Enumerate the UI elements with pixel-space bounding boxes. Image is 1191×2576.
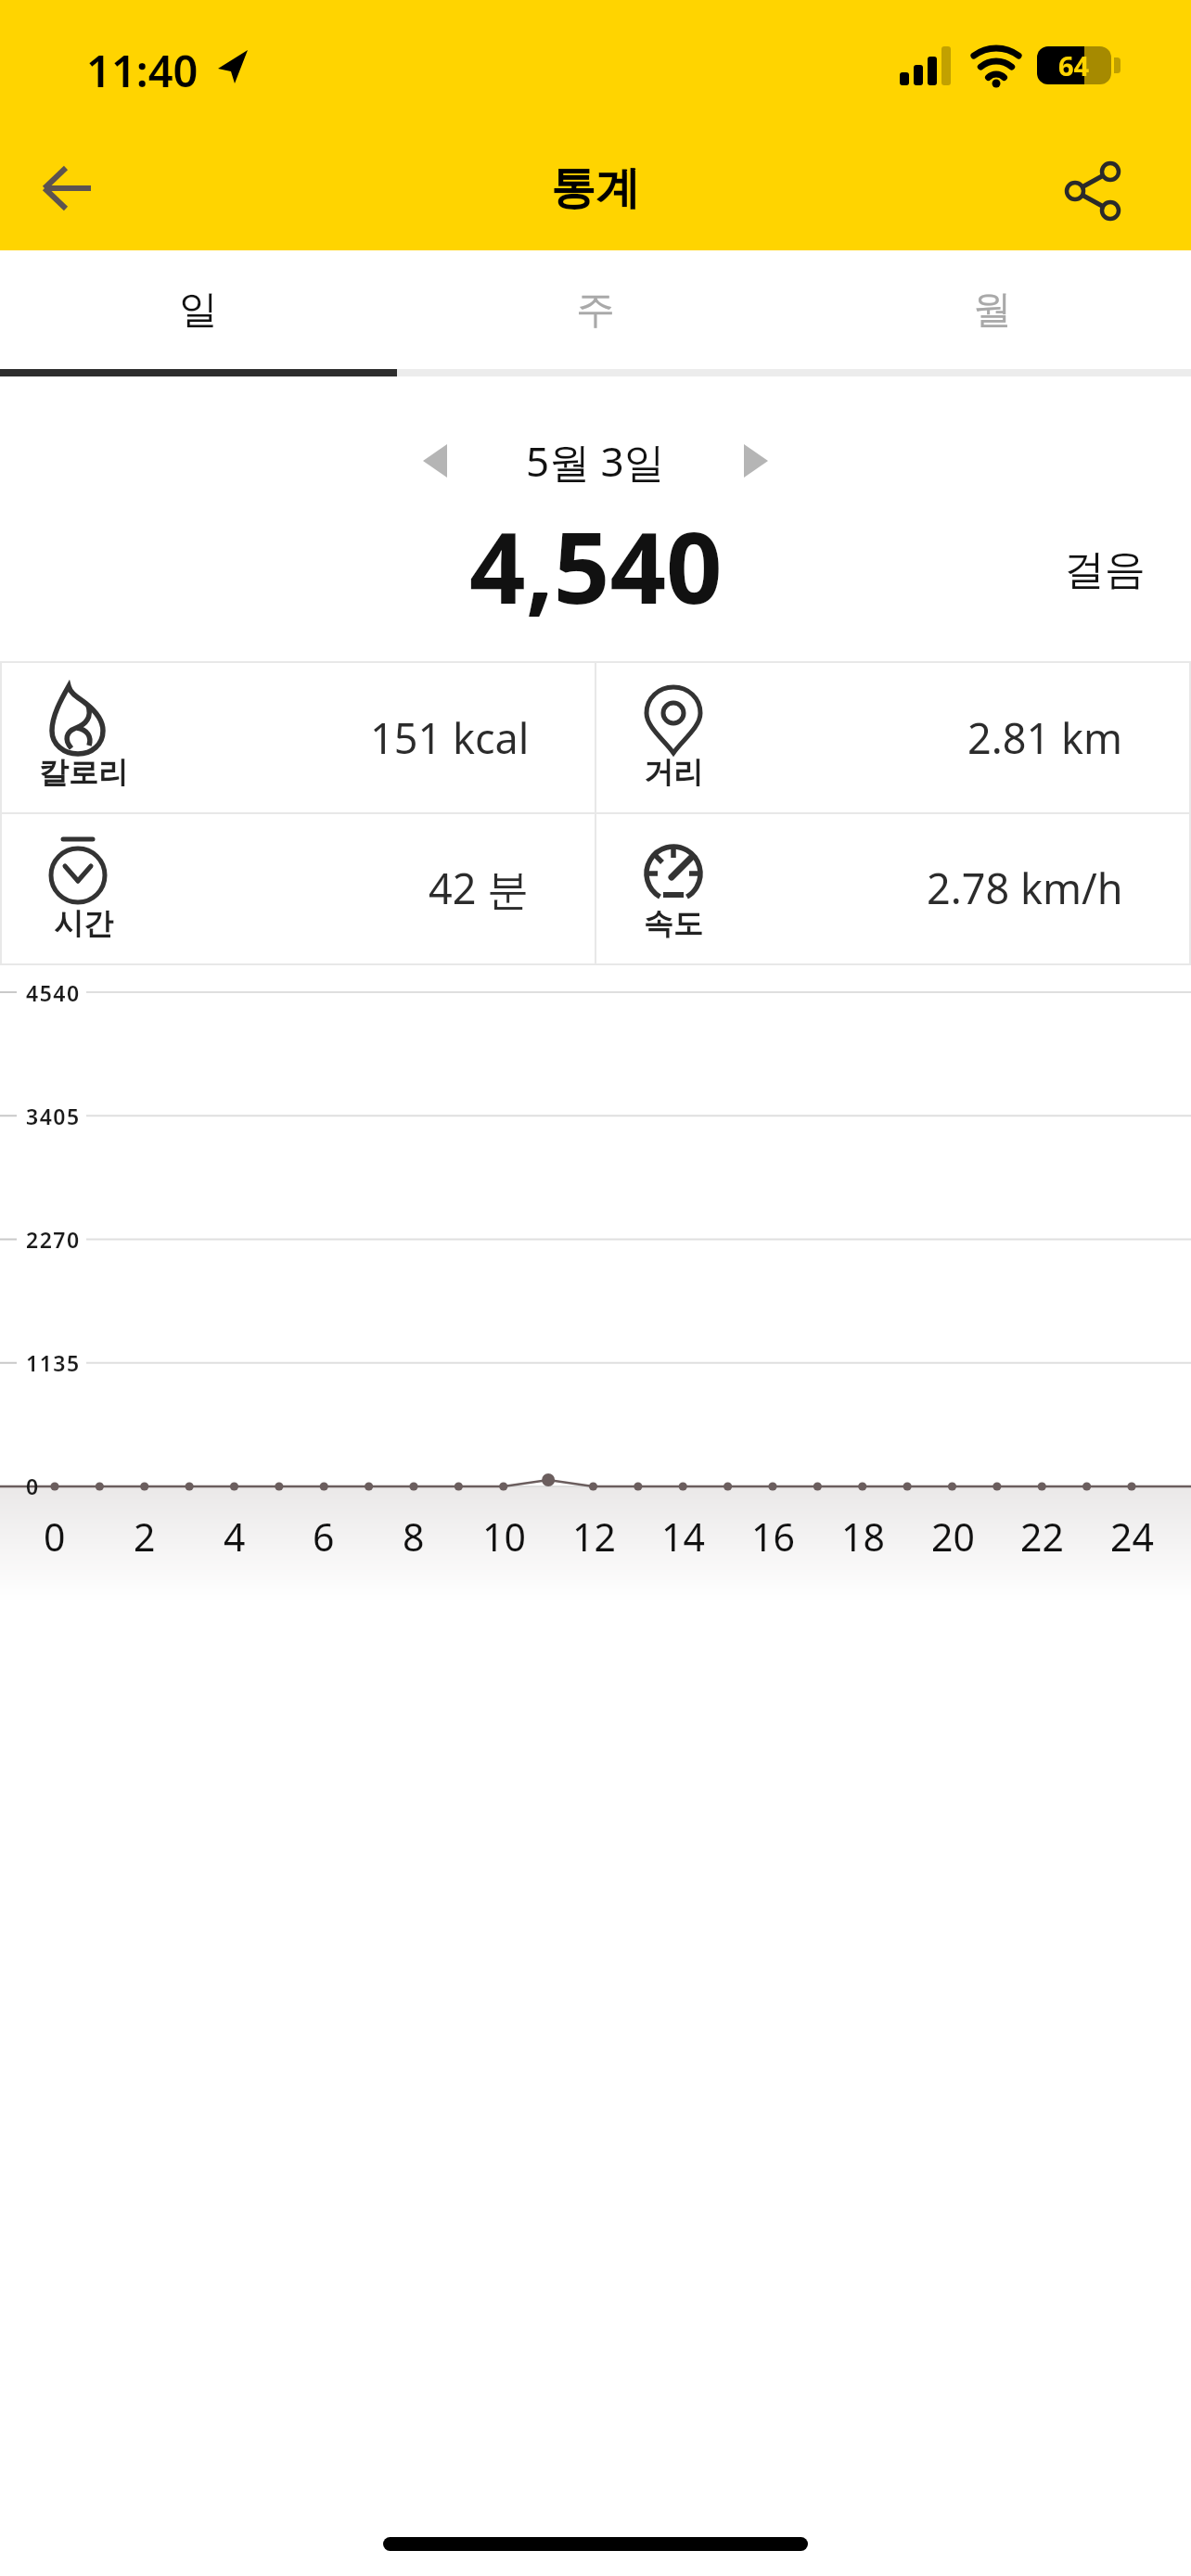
staticText: 속도 [644, 905, 703, 942]
staticText: 통계 [551, 160, 640, 216]
staticText: 걸음 [1064, 544, 1146, 595]
staticText: 0 [44, 1511, 66, 1559]
staticText: 8 [403, 1511, 425, 1559]
staticText: 월 [973, 286, 1012, 335]
staticText: 24 [1110, 1511, 1154, 1559]
button[interactable]: 월 [794, 250, 1191, 369]
staticText: 5월 3일 [526, 433, 665, 489]
staticText: 6 [313, 1511, 335, 1559]
staticText: 22 [1020, 1511, 1064, 1559]
staticText: 18 [841, 1511, 885, 1559]
staticText: 거리 [644, 754, 703, 791]
button[interactable] [407, 428, 463, 493]
staticText: 주 [576, 286, 615, 335]
button[interactable]: 주 [397, 250, 794, 369]
staticText: 12 [572, 1511, 616, 1559]
staticText: 1135 [26, 1348, 81, 1377]
staticText: 2.78 km/h [927, 860, 1123, 916]
staticText: 4540 [26, 978, 81, 1007]
staticText: 42 분 [429, 860, 530, 916]
staticText: 11:40 [86, 41, 198, 100]
staticText: 14 [661, 1511, 705, 1559]
staticText: 2 [134, 1511, 156, 1559]
staticText: 4,540 [469, 499, 723, 629]
button[interactable] [26, 158, 109, 219]
staticText: 16 [751, 1511, 795, 1559]
staticText: 일 [179, 286, 218, 335]
staticText: 2270 [26, 1225, 81, 1254]
staticText: 2.81 km [967, 709, 1123, 766]
staticText: 20 [931, 1511, 975, 1559]
button[interactable] [1054, 156, 1133, 226]
staticText: 151 kcal [370, 709, 530, 766]
staticText: 64 [1058, 47, 1090, 83]
staticText: 10 [482, 1511, 526, 1559]
staticText: 칼로리 [39, 754, 128, 791]
button[interactable]: 일 [0, 250, 397, 369]
button[interactable] [728, 428, 784, 493]
staticText: 시간 [54, 905, 113, 942]
staticText: 3405 [26, 1102, 81, 1130]
staticText: 4 [224, 1511, 246, 1559]
staticText: 0 [26, 1472, 40, 1500]
